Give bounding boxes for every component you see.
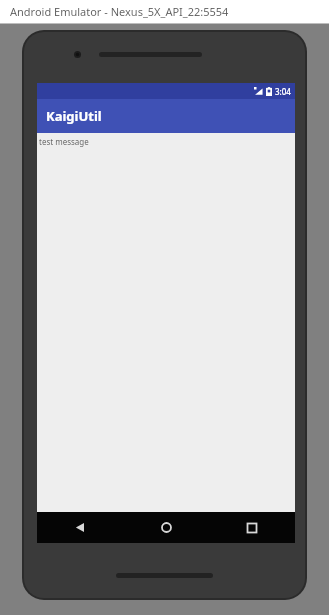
button[interactable]: KaigiUtil (37, 99, 295, 133)
button[interactable]: Recent apps (209, 512, 295, 543)
staticText: KaigiUtil (46, 107, 102, 125)
button[interactable]: Back (37, 512, 123, 543)
staticText: test message (39, 136, 89, 147)
button[interactable]: Home (123, 512, 209, 543)
staticText: Android Emulator - Nexus_5X_API_22:5554 (10, 4, 229, 19)
staticText: 3:04 (275, 86, 291, 97)
